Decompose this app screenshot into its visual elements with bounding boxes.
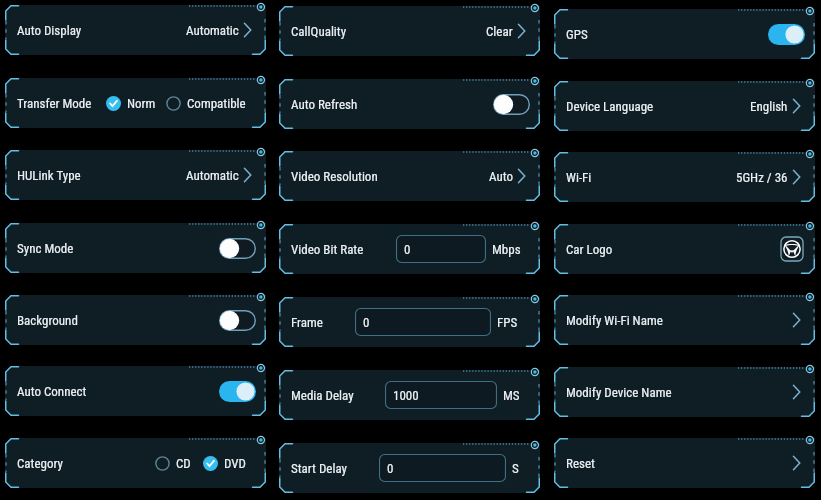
staticText: Start Delay	[291, 461, 347, 476]
staticText: Clear	[486, 24, 513, 39]
staticText: S	[512, 461, 519, 476]
staticText: Video Resolution	[291, 169, 378, 184]
staticText: Sync Mode	[17, 241, 74, 256]
button[interactable]: Modify Wi-Fi Name	[554, 295, 815, 345]
staticText: CD	[176, 456, 191, 471]
staticText: Auto Display	[17, 23, 82, 38]
button[interactable]: Modify Device Name	[554, 367, 815, 417]
staticText: 0	[387, 461, 394, 476]
button[interactable]: Reset	[554, 438, 815, 488]
staticText: Video Bit Rate	[291, 242, 364, 257]
button[interactable]: Auto Refresh	[493, 94, 530, 115]
button[interactable]: HULink Type	[5, 150, 266, 200]
staticText: GPS	[566, 27, 588, 42]
staticText: Car Logo	[566, 242, 613, 257]
staticText: Mbps	[492, 242, 521, 257]
button[interactable]: CallQuality	[279, 6, 540, 56]
staticText: 5GHz / 36	[736, 170, 788, 185]
button[interactable]: DVD	[203, 456, 246, 471]
button[interactable]: 0	[355, 308, 491, 336]
staticText: Auto	[489, 169, 513, 184]
staticText: 1000	[393, 388, 419, 403]
button[interactable]: Car Logo	[554, 224, 815, 274]
staticText: Media Delay	[291, 388, 354, 403]
button[interactable]: Compatible	[166, 96, 246, 111]
staticText: Modify Wi-Fi Name	[566, 313, 663, 328]
button[interactable]: Wi-Fi	[554, 152, 815, 202]
button[interactable]: Auto Connect	[219, 381, 256, 402]
button[interactable]: Auto Display	[5, 5, 266, 55]
staticText: 0	[404, 242, 411, 257]
button[interactable]: 0	[379, 454, 506, 482]
staticText: Frame	[291, 315, 323, 330]
staticText: 0	[363, 315, 370, 330]
staticText: Reset	[566, 456, 595, 471]
staticText: HULink Type	[17, 168, 81, 183]
staticText: FPS	[497, 315, 518, 330]
staticText: CallQuality	[291, 24, 347, 39]
button[interactable]: Video Resolution	[279, 151, 540, 201]
staticText: Wi-Fi	[566, 170, 592, 185]
staticText: English	[750, 99, 788, 114]
staticText: Automatic	[186, 168, 239, 183]
button[interactable]: Device Language	[554, 81, 815, 131]
staticText: Device Language	[566, 99, 654, 114]
staticText: Background	[17, 313, 78, 328]
button[interactable]: Car logo	[781, 237, 803, 261]
staticText: Compatible	[187, 96, 246, 111]
button[interactable]: GPS	[768, 24, 805, 45]
staticText: Norm	[127, 96, 156, 111]
staticText: Automatic	[186, 23, 239, 38]
button[interactable]: 1000	[385, 381, 497, 409]
button[interactable]: CD	[155, 456, 191, 471]
button[interactable]: Norm	[106, 96, 156, 111]
staticText: MS	[503, 388, 520, 403]
staticText: DVD	[224, 456, 246, 471]
staticText: Auto Connect	[17, 384, 87, 399]
staticText: Modify Device Name	[566, 385, 672, 400]
staticText: Transfer Mode	[17, 96, 92, 111]
button[interactable]: 0	[396, 235, 486, 263]
button[interactable]: Sync Mode	[219, 238, 256, 259]
staticText: Category	[17, 456, 63, 471]
staticText: Auto Refresh	[291, 97, 358, 112]
button[interactable]: Background	[219, 310, 256, 331]
